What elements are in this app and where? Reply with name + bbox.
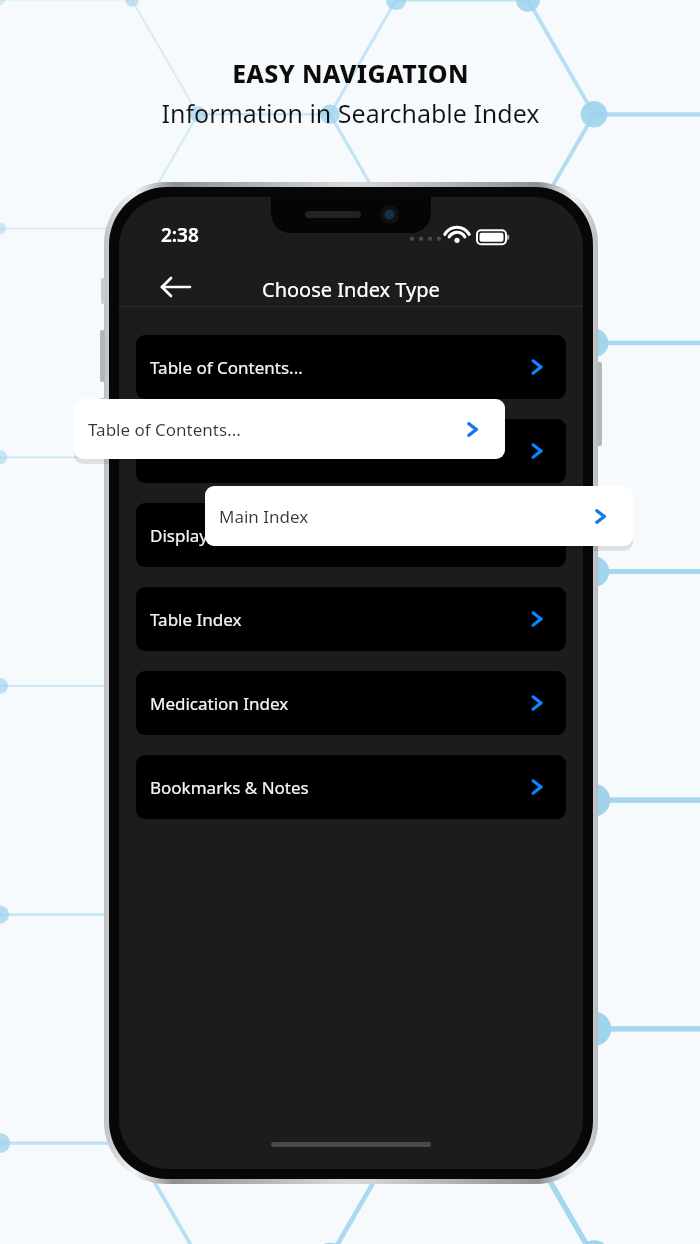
button[interactable]: Table of Contents... [136, 335, 566, 399]
staticText: Table of Contents... [88, 418, 462, 441]
staticText: Main Index [219, 505, 590, 528]
staticText: Main Index [150, 440, 526, 463]
button[interactable]: Main Index [205, 486, 633, 546]
staticText: Table of Contents... [150, 356, 526, 379]
staticText: Medication Index [150, 692, 526, 715]
staticText: Table Index [150, 608, 526, 631]
button[interactable]: Table of Contents... [74, 399, 505, 459]
button[interactable]: Display Settings [136, 503, 566, 567]
staticText: 2:38 [161, 222, 199, 248]
button[interactable]: Medication Index [136, 671, 566, 735]
staticText: Display Settings [150, 524, 526, 547]
button[interactable]: Table Index [136, 587, 566, 651]
staticText: EASY NAVIGATION [232, 56, 469, 90]
button[interactable]: Bookmarks & Notes [136, 755, 566, 819]
button[interactable]: Back [147, 265, 203, 309]
staticText: Information in Searchable Index [161, 96, 540, 130]
staticText: Bookmarks & Notes [150, 776, 526, 799]
button[interactable]: Main Index [136, 419, 566, 483]
staticText: Choose Index Type [262, 276, 440, 303]
